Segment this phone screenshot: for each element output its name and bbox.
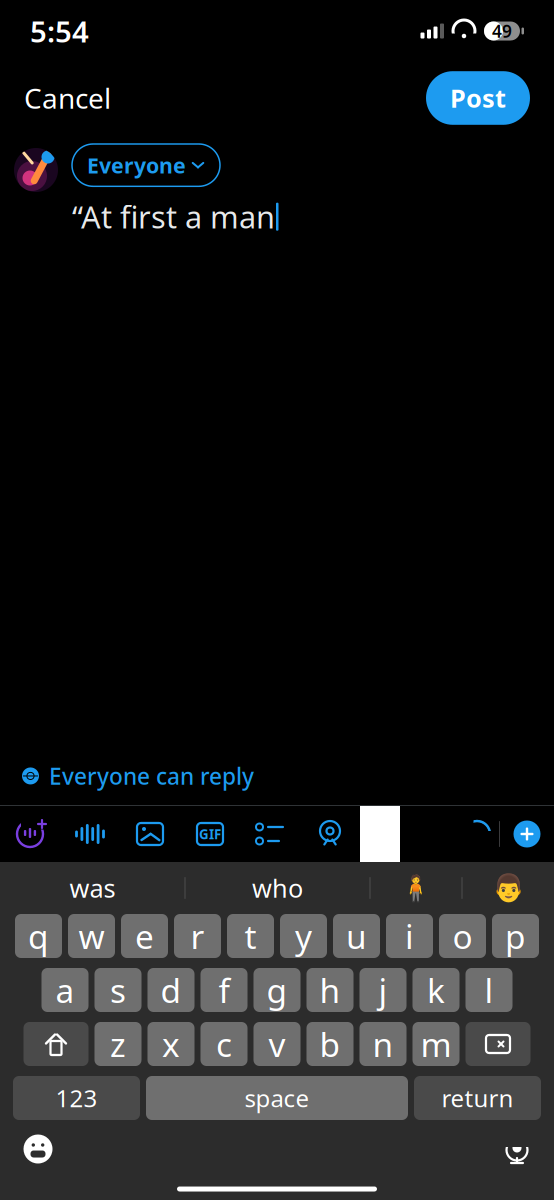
button[interactable]: g xyxy=(253,968,300,1012)
staticText: j xyxy=(378,968,387,1012)
staticText: c xyxy=(216,1022,232,1066)
button[interactable]: v xyxy=(253,1022,300,1066)
button[interactable]: 🧍 xyxy=(370,866,461,910)
staticText: o xyxy=(452,914,472,958)
button[interactable]: q xyxy=(15,914,62,958)
button[interactable]: l xyxy=(465,968,512,1012)
button[interactable]: m xyxy=(412,1022,459,1066)
button[interactable]: z xyxy=(94,1022,141,1066)
staticText: e xyxy=(135,914,154,958)
button[interactable]: Post xyxy=(426,71,530,125)
staticText: a xyxy=(55,968,74,1012)
staticText: q xyxy=(28,914,49,958)
button[interactable]: s xyxy=(94,968,141,1012)
staticText: b xyxy=(319,1022,340,1066)
button[interactable]: Photos xyxy=(135,821,165,847)
staticText: u xyxy=(346,914,367,958)
staticText: m xyxy=(420,1022,451,1066)
button[interactable]: x xyxy=(147,1022,194,1066)
button[interactable]: y xyxy=(280,914,327,958)
button[interactable]: Grok xyxy=(13,818,47,850)
button[interactable]: 123 xyxy=(13,1076,140,1120)
button[interactable]: w xyxy=(68,914,115,958)
button[interactable]: d xyxy=(147,968,194,1012)
button[interactable]: b xyxy=(306,1022,353,1066)
button[interactable]: Poll xyxy=(255,821,285,847)
staticText: 👨 xyxy=(491,873,524,903)
button[interactable]: Emoji xyxy=(22,1133,54,1165)
button[interactable]: Delete xyxy=(465,1022,530,1066)
staticText: return xyxy=(441,1082,513,1114)
button[interactable]: GIF xyxy=(195,821,225,847)
staticText: g xyxy=(266,968,287,1012)
staticText: k xyxy=(427,968,445,1012)
staticText: f xyxy=(218,968,229,1012)
button[interactable]: j xyxy=(359,968,406,1012)
staticText: z xyxy=(110,1022,126,1066)
staticText: y xyxy=(295,914,312,958)
button[interactable]: o xyxy=(439,914,486,958)
staticText: “At first a man xyxy=(72,196,275,237)
button[interactable]: a xyxy=(41,968,88,1012)
button[interactable]: return xyxy=(414,1076,541,1120)
staticText: Cancel xyxy=(24,79,111,117)
button[interactable]: Cancel xyxy=(24,71,121,125)
button[interactable]: Audio xyxy=(74,822,106,846)
button[interactable]: Shift xyxy=(23,1022,88,1066)
button[interactable]: Everyone can reply xyxy=(0,747,554,805)
staticText: 🧍 xyxy=(400,873,432,902)
staticText: v xyxy=(268,1022,285,1066)
button[interactable]: 👨 xyxy=(462,866,553,910)
staticText: Everyone xyxy=(87,151,186,179)
staticText: p xyxy=(505,914,526,958)
button[interactable]: p xyxy=(492,914,539,958)
button[interactable]: r xyxy=(174,914,221,958)
staticText: Everyone can reply xyxy=(49,761,254,791)
button[interactable]: who xyxy=(185,866,369,910)
staticText: 49 xyxy=(492,19,512,42)
staticText: s xyxy=(110,968,126,1012)
staticText: t xyxy=(244,914,256,958)
button[interactable]: Character count xyxy=(455,812,499,856)
button[interactable]: k xyxy=(412,968,459,1012)
button[interactable]: n xyxy=(359,1022,406,1066)
staticText: l xyxy=(484,968,493,1012)
button[interactable]: u xyxy=(333,914,380,958)
button[interactable]: t xyxy=(227,914,274,958)
button[interactable]: h xyxy=(306,968,353,1012)
button[interactable]: Dictation xyxy=(502,1132,532,1166)
staticText: GIF xyxy=(199,825,221,843)
staticText: 5:54 xyxy=(30,11,89,50)
button[interactable]: was xyxy=(0,866,184,910)
button[interactable]: f xyxy=(200,968,247,1012)
staticText: n xyxy=(372,1022,393,1066)
button[interactable]: e xyxy=(121,914,168,958)
button[interactable]: Everyone xyxy=(72,144,220,186)
staticText: 123 xyxy=(55,1082,97,1114)
button[interactable]: i xyxy=(386,914,433,958)
staticText: h xyxy=(319,968,340,1012)
button[interactable]: c xyxy=(200,1022,247,1066)
staticText: Post xyxy=(450,81,506,115)
button[interactable]: Add post xyxy=(500,812,554,856)
button[interactable]: space xyxy=(146,1076,408,1120)
staticText: was xyxy=(69,871,115,905)
staticText: x xyxy=(162,1022,180,1066)
staticText: i xyxy=(405,914,414,958)
staticText: d xyxy=(160,968,181,1012)
staticText: w xyxy=(78,914,104,958)
button[interactable]: Location xyxy=(315,820,345,848)
staticText: r xyxy=(190,914,204,958)
staticText: space xyxy=(244,1082,309,1114)
staticText: who xyxy=(252,871,303,905)
